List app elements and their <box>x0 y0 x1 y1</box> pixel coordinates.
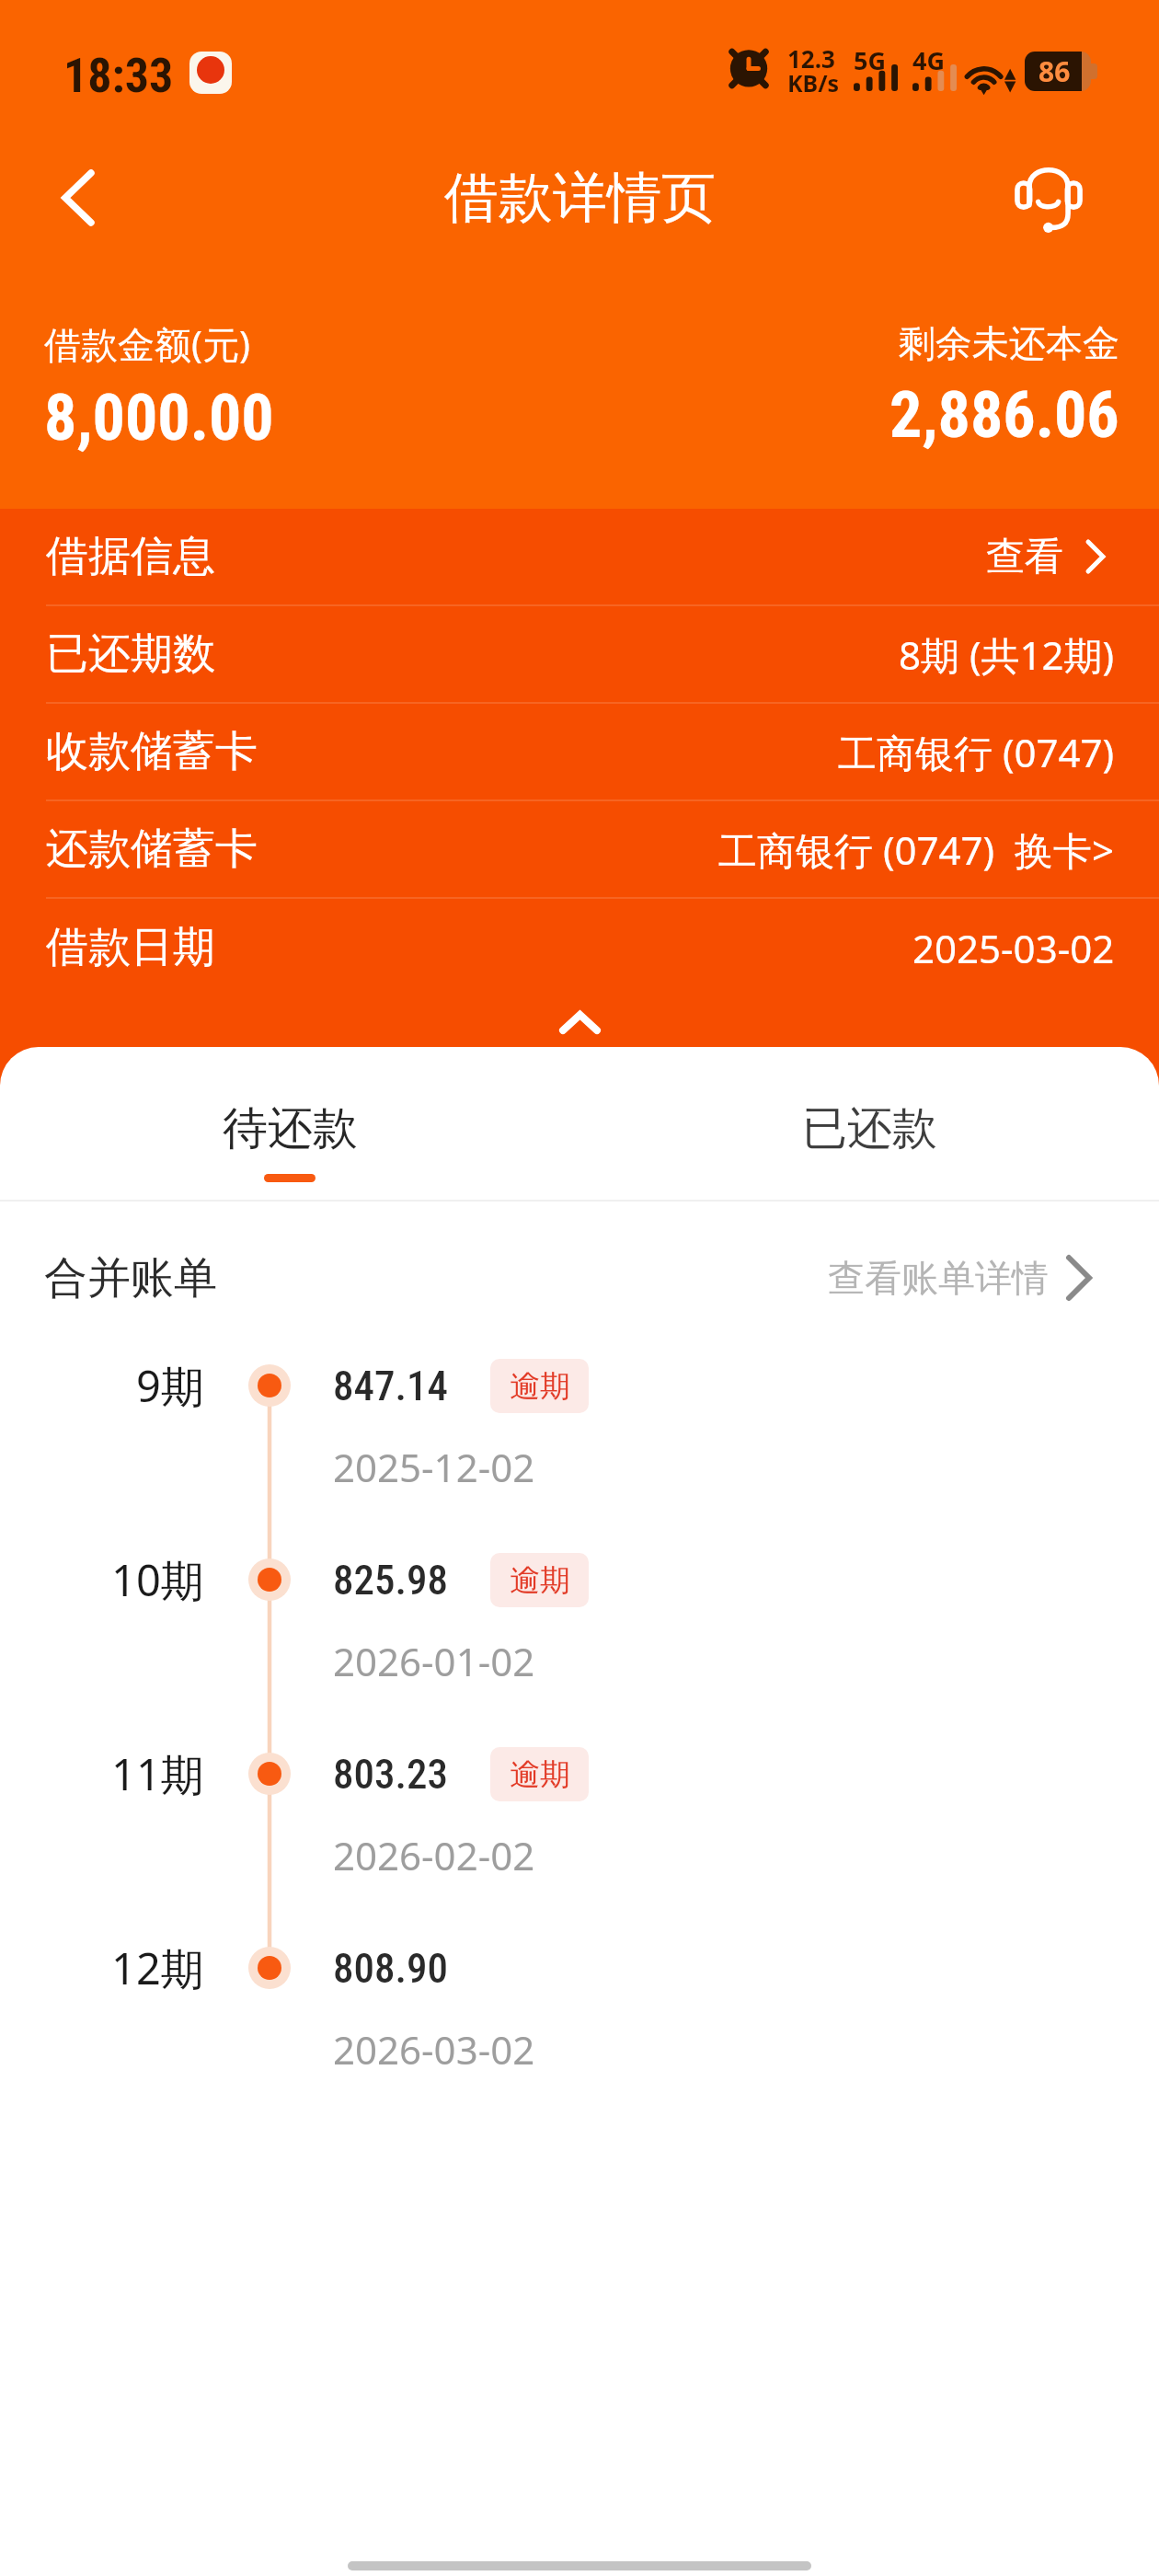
button[interactable]: 11期 <box>0 1733 1159 1927</box>
staticText: 合并账单 <box>44 1251 217 1305</box>
staticText: 逾期 <box>510 1367 570 1406</box>
staticText: 借款详情页 <box>444 164 716 232</box>
staticText: 逾期 <box>510 1561 570 1600</box>
staticText: KB/s <box>787 67 840 98</box>
button[interactable]: 借据信息 <box>0 509 1159 606</box>
button[interactable]: Back <box>28 135 129 260</box>
staticText: 803.23 <box>333 1750 449 1799</box>
staticText: 查看账单详情 <box>828 1255 1049 1301</box>
button[interactable]: 已还款 <box>579 1047 1159 1200</box>
staticText: 808.90 <box>333 1944 449 1993</box>
button[interactable]: 9期 <box>0 1345 1159 1539</box>
staticText: 借款金额(元) <box>44 318 250 369</box>
staticText: 借据信息 <box>46 530 215 583</box>
button[interactable]: 已还期数 <box>0 606 1159 704</box>
staticText: 2026-02-02 <box>333 1829 535 1881</box>
staticText: 已还款 <box>802 1100 937 1157</box>
staticText: 18:33 <box>63 48 174 104</box>
staticText: 待还款 <box>223 1100 358 1157</box>
staticText: 8期 (共12期) <box>899 628 1115 681</box>
staticText: 847.14 <box>333 1362 449 1410</box>
button[interactable]: 10期 <box>0 1539 1159 1733</box>
button[interactable]: Collapse <box>0 981 1159 1047</box>
staticText: 10期 <box>111 1550 204 1609</box>
staticText: 已还期数 <box>46 627 215 681</box>
staticText: 86 <box>1039 52 1071 90</box>
button[interactable]: 合并账单 <box>44 1206 1093 1350</box>
button[interactable]: 还款储蓄卡 <box>0 801 1159 899</box>
staticText: 还款储蓄卡 <box>46 822 258 876</box>
staticText: 5G <box>854 43 886 77</box>
staticText: 2026-03-02 <box>333 2023 535 2076</box>
staticText: 8,000.00 <box>44 380 274 455</box>
button[interactable]: 借款日期 <box>0 899 1159 996</box>
button[interactable]: 待还款 <box>0 1047 579 1200</box>
button[interactable]: 收款储蓄卡 <box>0 704 1159 801</box>
staticText: 12.3 <box>787 42 835 75</box>
staticText: 9期 <box>136 1356 204 1415</box>
staticText: 4G <box>912 43 945 77</box>
staticText: 收款储蓄卡 <box>46 725 258 778</box>
staticText: 查看 <box>986 533 1063 581</box>
staticText: 工商银行 (0747) <box>838 726 1115 778</box>
staticText: 825.98 <box>333 1556 449 1604</box>
staticText: 12期 <box>111 1938 204 1997</box>
staticText: 11期 <box>111 1744 204 1803</box>
staticText: 逾期 <box>510 1755 570 1794</box>
button[interactable]: Customer service <box>986 135 1111 260</box>
staticText: 2,886.06 <box>889 377 1119 453</box>
button[interactable]: 12期 <box>0 1927 1159 2122</box>
staticText: 剩余未还本金 <box>899 320 1119 366</box>
staticText: 借款日期 <box>46 921 215 974</box>
staticText: 2025-03-02 <box>912 922 1115 974</box>
staticText: 2025-12-02 <box>333 1441 535 1493</box>
staticText: 2026-01-02 <box>333 1635 535 1687</box>
staticText: 工商银行 (0747) 换卡> <box>718 823 1115 876</box>
